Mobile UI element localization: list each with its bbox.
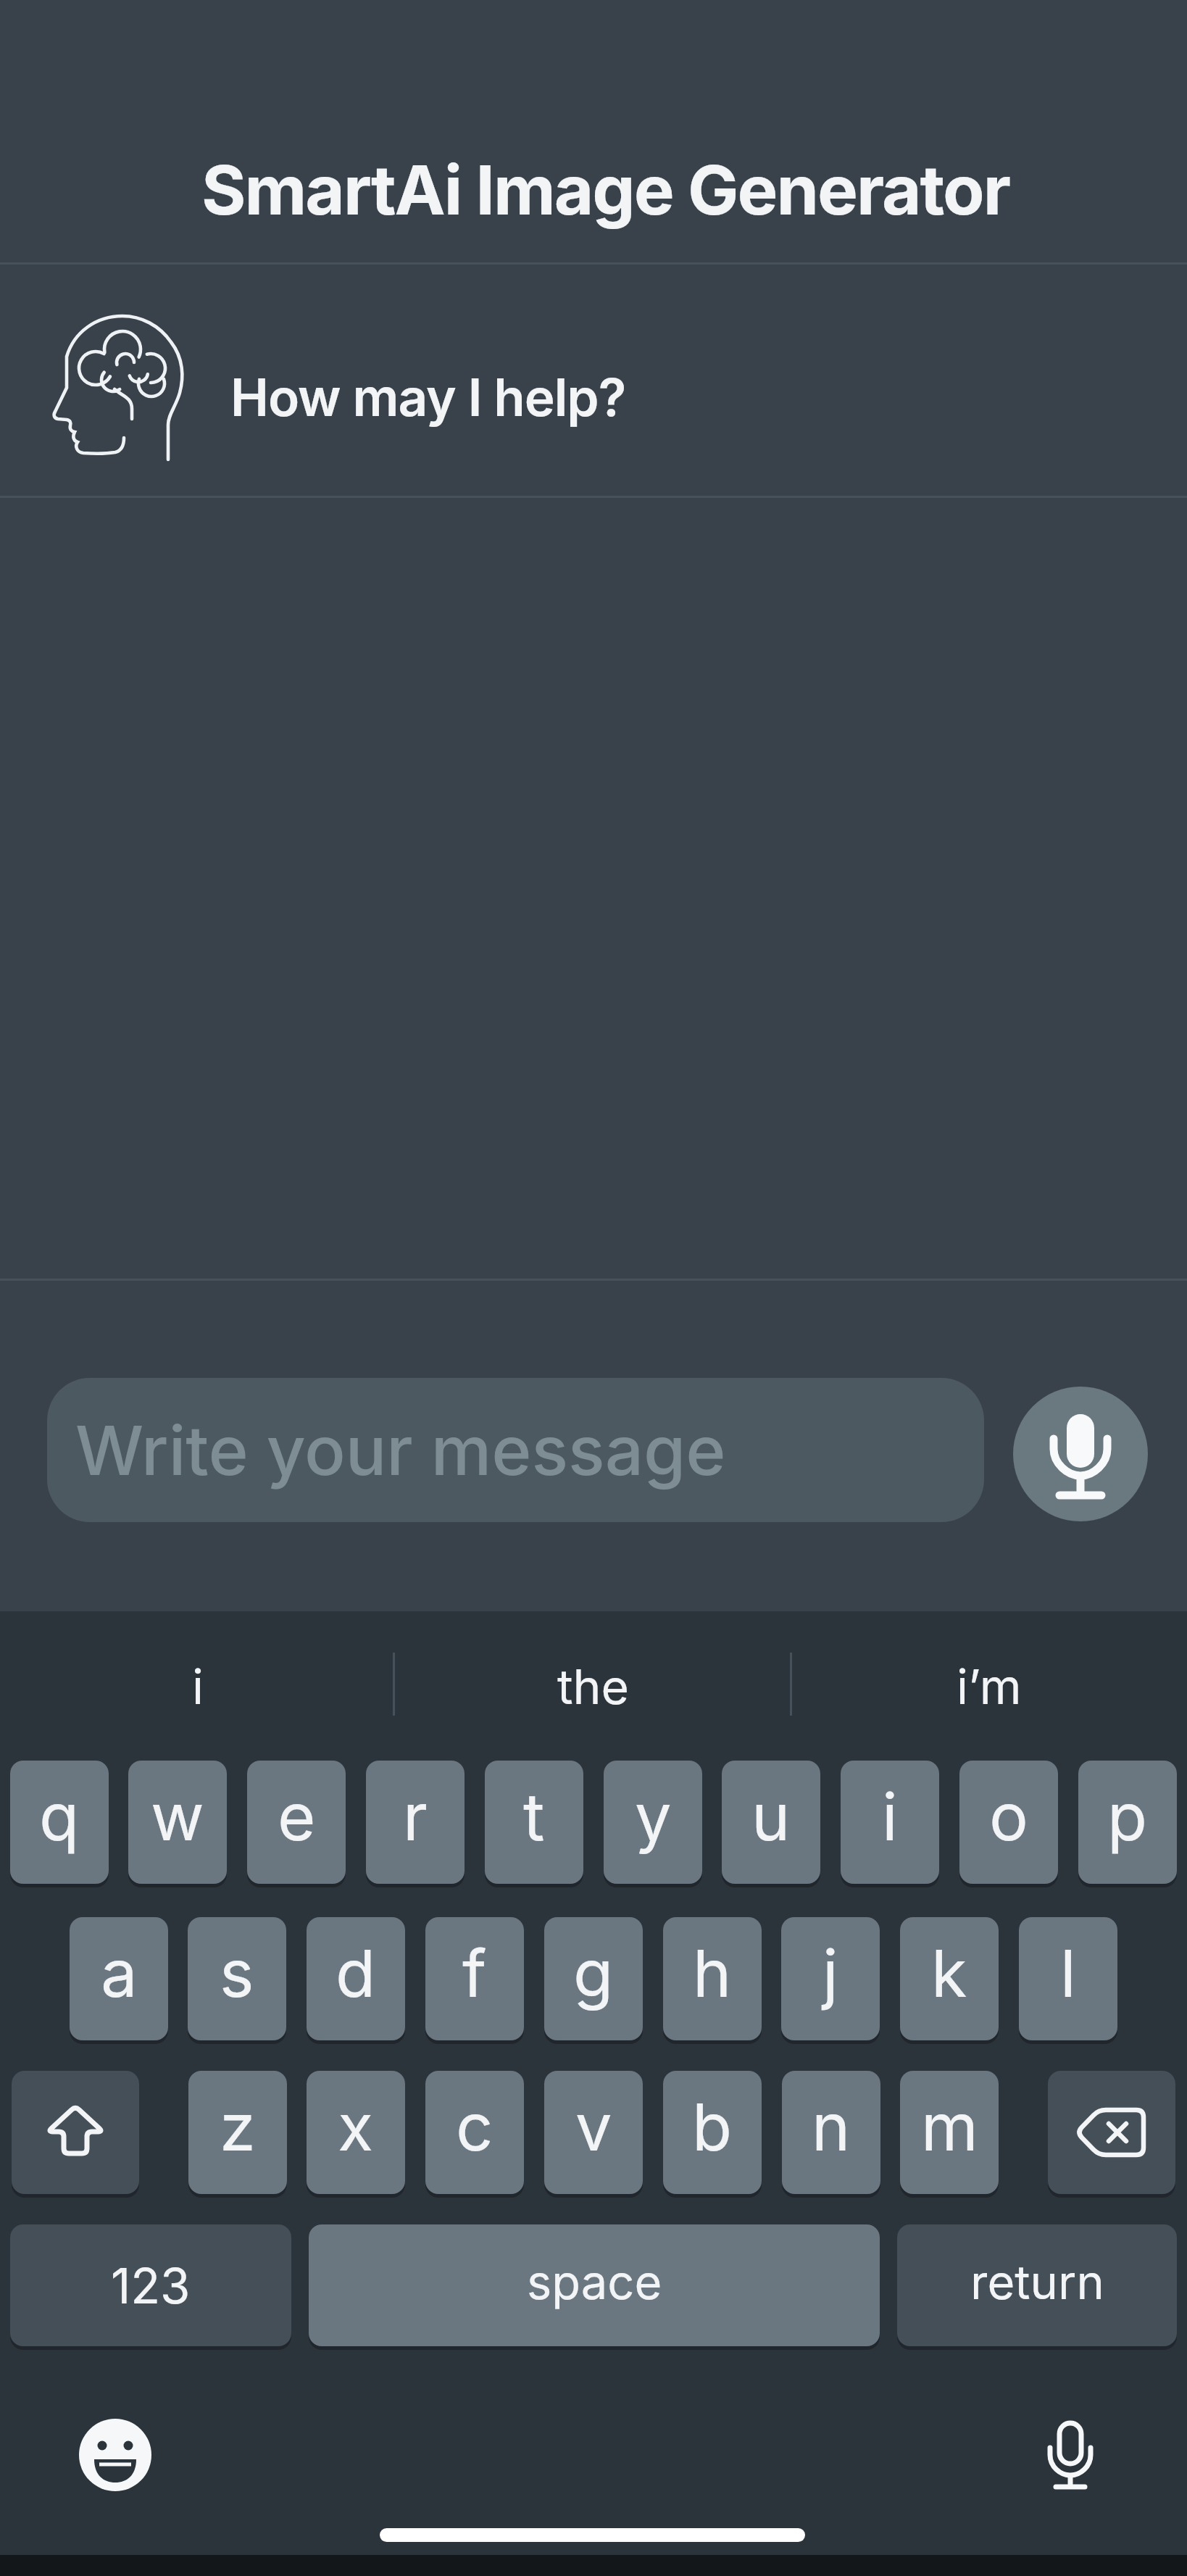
button[interactable]: n <box>782 2071 880 2194</box>
button[interactable]: 123 <box>10 2224 291 2346</box>
staticText: p <box>1107 1777 1148 1856</box>
button[interactable]: q <box>10 1761 109 1884</box>
button[interactable]: k <box>900 1917 999 2040</box>
staticText: f <box>462 1934 487 2013</box>
staticText: x <box>338 2087 374 2166</box>
staticText: Write your message <box>75 1409 726 1492</box>
button[interactable]: i <box>0 1650 396 1723</box>
button[interactable]: f <box>425 1917 524 2040</box>
button[interactable]: v <box>544 2071 643 2194</box>
staticText: s <box>220 1934 254 2013</box>
button[interactable]: m <box>900 2071 999 2194</box>
staticText: How may I help? <box>230 366 626 428</box>
button[interactable]: g <box>544 1917 643 2040</box>
staticText: w <box>151 1777 204 1856</box>
button[interactable]: Write your message <box>47 1378 984 1522</box>
staticText: i <box>192 1658 204 1716</box>
button[interactable]: return <box>897 2224 1177 2346</box>
staticText: e <box>278 1777 316 1856</box>
button[interactable]: i <box>841 1761 939 1884</box>
staticText: n <box>812 2087 851 2166</box>
staticText: b <box>692 2087 733 2166</box>
staticText: d <box>336 1934 376 2013</box>
button[interactable]: l <box>1019 1917 1117 2040</box>
button[interactable] <box>1025 2410 1115 2500</box>
button[interactable]: the <box>396 1650 791 1723</box>
staticText: g <box>573 1934 614 2013</box>
button[interactable] <box>70 2410 160 2500</box>
staticText: return <box>970 2253 1104 2311</box>
staticText: h <box>693 1934 732 2013</box>
button[interactable]: r <box>366 1761 465 1884</box>
staticText: j <box>822 1934 838 2013</box>
button[interactable]: j <box>781 1917 880 2040</box>
button[interactable]: s <box>188 1917 286 2040</box>
staticText: a <box>101 1934 138 2013</box>
staticText: k <box>931 1934 967 2013</box>
staticText: the <box>557 1658 630 1716</box>
button[interactable]: space <box>309 2224 880 2346</box>
staticText: v <box>575 2087 612 2166</box>
staticText: y <box>635 1777 672 1856</box>
button[interactable]: a <box>70 1917 168 2040</box>
staticText: i <box>882 1777 898 1856</box>
staticText: t <box>523 1777 545 1856</box>
staticText: 123 <box>111 2256 191 2315</box>
button[interactable]: o <box>959 1761 1058 1884</box>
staticText: q <box>39 1777 80 1856</box>
button[interactable]: e <box>247 1761 346 1884</box>
staticText: z <box>220 2087 256 2166</box>
button[interactable] <box>1013 1387 1148 1521</box>
button[interactable]: u <box>722 1761 820 1884</box>
staticText: u <box>751 1777 791 1856</box>
button[interactable]: p <box>1078 1761 1177 1884</box>
staticText: c <box>456 2087 493 2166</box>
button[interactable]: b <box>663 2071 762 2194</box>
button[interactable]: t <box>485 1761 583 1884</box>
staticText: r <box>403 1777 428 1856</box>
button[interactable]: i’m <box>791 1650 1187 1723</box>
staticText: l <box>1060 1934 1076 2013</box>
button[interactable] <box>12 2071 139 2194</box>
staticText: space <box>527 2253 662 2311</box>
staticText: SmartAi Image Generator <box>201 149 1010 231</box>
button[interactable]: h <box>663 1917 762 2040</box>
button[interactable]: w <box>128 1761 227 1884</box>
button[interactable]: d <box>307 1917 405 2040</box>
button[interactable]: c <box>425 2071 524 2194</box>
staticText: m <box>921 2087 978 2166</box>
staticText: i’m <box>957 1658 1022 1716</box>
button[interactable]: z <box>188 2071 287 2194</box>
button[interactable] <box>1048 2071 1175 2194</box>
button[interactable]: x <box>307 2071 405 2194</box>
staticText: o <box>989 1777 1028 1856</box>
button[interactable]: y <box>604 1761 702 1884</box>
